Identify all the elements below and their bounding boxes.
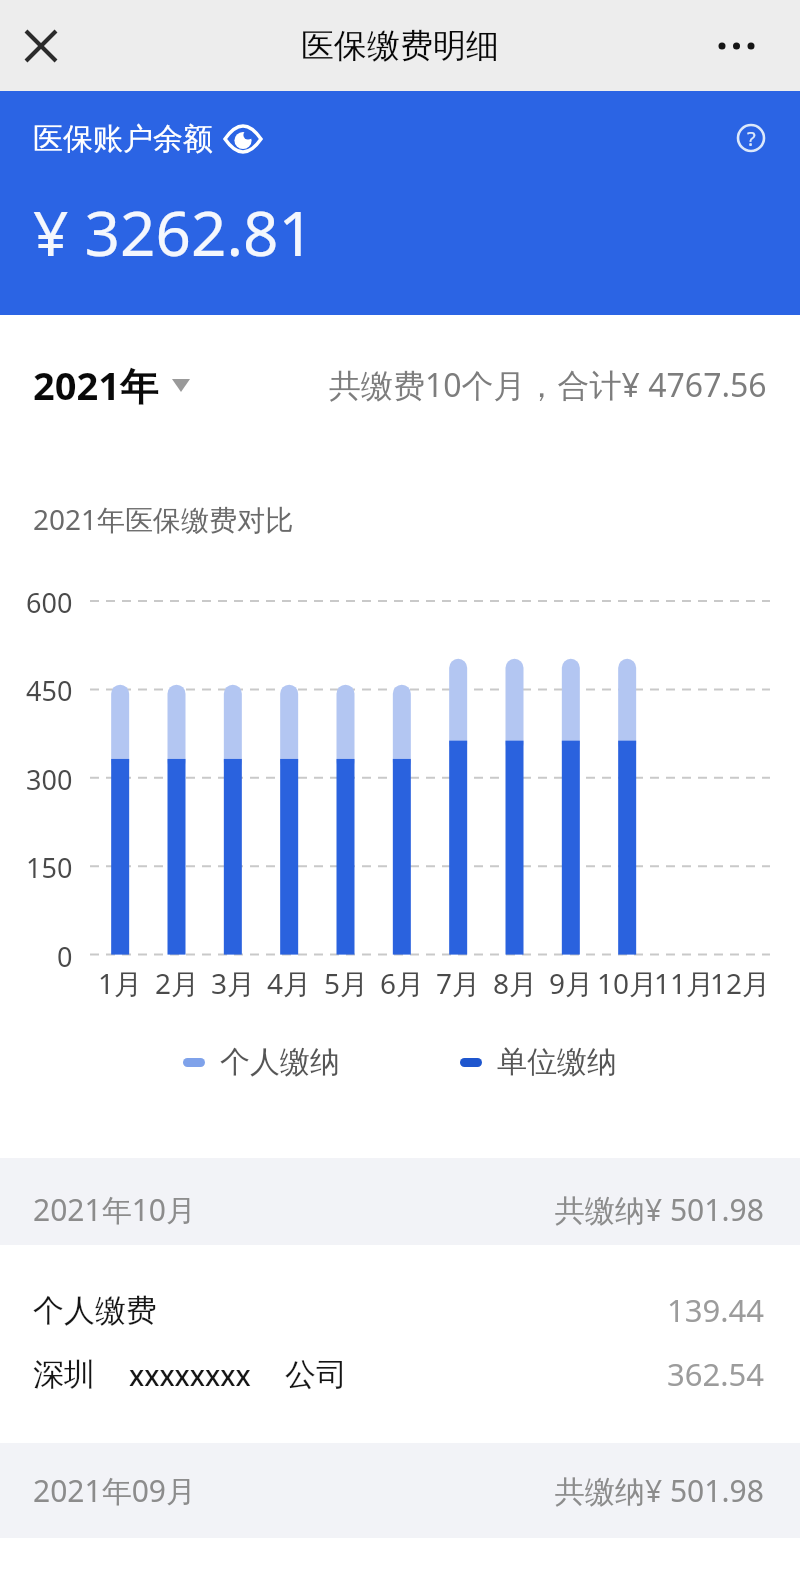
button[interactable]: 2021年 — [33, 359, 190, 411]
staticText: 3月 — [211, 964, 256, 1002]
staticText: 2021年10月 — [33, 1189, 196, 1230]
staticText: 共缴纳¥ 501.98 — [555, 1470, 764, 1511]
staticText: 医保账户余额 — [33, 120, 213, 158]
staticText: 600 — [26, 584, 73, 618]
staticText: 10月 — [597, 964, 658, 1002]
staticText: 12月 — [710, 964, 771, 1002]
button[interactable] — [706, 24, 776, 68]
staticText: 7月 — [436, 964, 481, 1002]
button[interactable] — [18, 24, 64, 68]
staticText: 个人缴费 — [33, 1291, 157, 1330]
staticText: 4月 — [267, 964, 312, 1002]
staticText: 深圳 — [33, 1355, 95, 1394]
staticText: 共缴费10个月，合计¥ 4767.56 — [329, 363, 767, 407]
button[interactable]: 医保账户余额 — [0, 91, 800, 315]
staticText: 个人缴纳 — [220, 1043, 340, 1081]
staticText: 139.44 — [667, 1289, 764, 1331]
staticText: 300 — [26, 761, 73, 795]
button[interactable]: 2021年09月 — [0, 1443, 800, 1538]
staticText: 450 — [26, 672, 73, 706]
staticText: 150 — [26, 849, 73, 883]
staticText: 2月 — [155, 964, 200, 1002]
staticText: 1月 — [98, 964, 143, 1002]
staticText: ? — [747, 125, 756, 152]
staticText: 2021年医保缴费对比 — [33, 500, 294, 534]
staticText: ¥ 3262.81 — [33, 190, 314, 264]
staticText: 8月 — [493, 964, 538, 1002]
button[interactable]: 2021年10月 — [0, 1158, 800, 1245]
staticText: 0 — [57, 938, 73, 972]
staticText: 2021年09月 — [33, 1470, 196, 1511]
staticText: 6月 — [380, 964, 425, 1002]
staticText: 362.54 — [667, 1353, 764, 1395]
staticText: 11月 — [654, 964, 715, 1002]
staticText: xxxxxxxx — [129, 1356, 251, 1394]
button[interactable]: 深圳 — [0, 1343, 800, 1405]
staticText: 公司 — [285, 1355, 347, 1394]
staticText: 共缴纳¥ 501.98 — [555, 1189, 764, 1230]
staticText: 医保缴费明细 — [301, 25, 499, 67]
button[interactable]: 个人缴费 — [0, 1277, 800, 1343]
button[interactable]: ? — [730, 117, 772, 159]
staticText: 单位缴纳 — [497, 1043, 617, 1081]
staticText: 2021年 — [33, 359, 158, 411]
staticText: 9月 — [549, 964, 594, 1002]
staticText: 5月 — [324, 964, 369, 1002]
